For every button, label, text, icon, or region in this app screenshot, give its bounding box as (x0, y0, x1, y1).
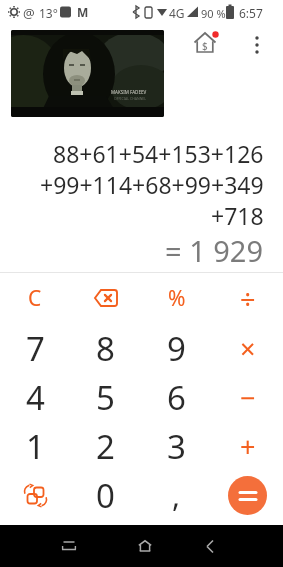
button[interactable]: × (212, 323, 283, 373)
staticText: , (172, 475, 181, 516)
button[interactable]: C (0, 273, 70, 323)
staticText: @ (23, 4, 35, 22)
button[interactable]: 8 (70, 323, 141, 373)
button[interactable]: ÷ (212, 273, 283, 323)
button[interactable]: % (141, 273, 212, 323)
staticText: OFFICIAL CHANNEL (114, 96, 147, 101)
staticText: 90 % (201, 6, 226, 21)
button[interactable]: 4 (0, 373, 70, 422)
button[interactable]: 2 (70, 422, 141, 471)
button[interactable] (70, 273, 141, 323)
button[interactable]: 0 (70, 471, 141, 520)
staticText: 3 (167, 424, 186, 469)
button[interactable] (56, 533, 82, 559)
staticText: 6 (167, 375, 186, 420)
staticText: 7 (26, 326, 45, 371)
staticText: 88+61+54+153+126 (53, 138, 264, 169)
staticText: ÷ (240, 280, 256, 317)
staticText: +718 (211, 200, 264, 231)
button[interactable] (0, 471, 70, 520)
button[interactable]: 3 (141, 422, 212, 471)
staticText: × (240, 330, 256, 367)
staticText: 1 (26, 424, 45, 469)
button[interactable] (248, 32, 266, 62)
button[interactable] (212, 471, 283, 520)
staticText: 13° (39, 5, 58, 21)
button[interactable]: 6 (141, 373, 212, 422)
staticText: − (240, 379, 256, 416)
staticText: 4 (26, 375, 45, 420)
button[interactable]: 7 (0, 323, 70, 373)
staticText: 6:57 (239, 5, 263, 21)
staticText: MAKSIM FADEEV (111, 89, 147, 95)
staticText: C (28, 284, 42, 313)
button[interactable] (132, 533, 158, 559)
button[interactable]: 1 (0, 422, 70, 471)
button[interactable]: 5 (70, 373, 141, 422)
staticText: = 1 929 (165, 231, 264, 270)
staticText: % (168, 284, 186, 313)
staticText: 0 (96, 473, 115, 518)
button[interactable]: MAKSIM FADEEV (11, 30, 164, 117)
staticText: 8 (96, 326, 115, 371)
button[interactable]: − (212, 373, 283, 422)
staticText: 4G (169, 5, 185, 21)
staticText: M (77, 4, 89, 20)
staticText: 5 (96, 375, 115, 420)
staticText: 9 (167, 326, 186, 371)
staticText: $ (202, 39, 208, 53)
staticText: + (240, 428, 256, 465)
button[interactable]: $ (193, 31, 221, 57)
staticText: +99+114+68+99+349 (40, 169, 264, 200)
button[interactable] (197, 533, 223, 559)
staticText: 2 (96, 424, 115, 469)
button[interactable]: 9 (141, 323, 212, 373)
button[interactable]: + (212, 422, 283, 471)
button[interactable]: , (141, 471, 212, 520)
